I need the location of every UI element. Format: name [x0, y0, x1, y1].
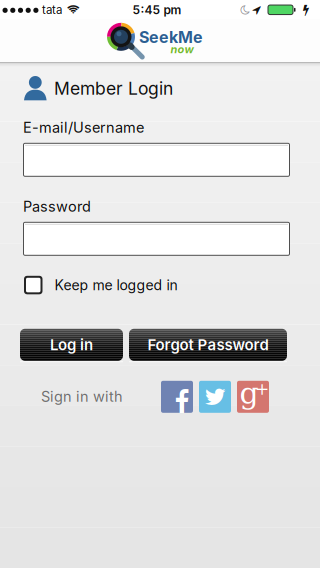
staticText: Keep me logged in	[54, 277, 177, 293]
staticText: Forgot Password	[147, 336, 268, 354]
staticText: 	[240, 4, 249, 15]
staticText: 5:45 pm	[132, 2, 181, 17]
staticText: 	[204, 385, 225, 408]
staticText: E-mail/Username	[23, 119, 144, 136]
staticText: 	[303, 4, 309, 16]
button[interactable]: 	[161, 381, 193, 413]
button[interactable]: Forgot Password	[129, 329, 287, 361]
staticText: tata	[42, 3, 62, 17]
button[interactable]: 	[199, 381, 231, 413]
staticText: g	[239, 376, 258, 411]
staticText: 	[174, 389, 189, 415]
staticText: Log in	[50, 336, 93, 354]
staticText: Member Login	[54, 78, 173, 99]
staticText: +	[255, 379, 269, 399]
staticText: 	[252, 4, 260, 15]
staticText: now	[170, 43, 193, 56]
staticText: 	[67, 4, 80, 15]
staticText: Sign in with	[41, 388, 123, 405]
staticText: Password	[23, 198, 91, 215]
button[interactable]: Log in	[20, 329, 123, 361]
button[interactable]: g	[237, 381, 269, 413]
button[interactable]	[23, 222, 290, 256]
button[interactable]: Keep me logged in	[24, 276, 177, 294]
staticText: SeekMe	[139, 28, 203, 47]
button[interactable]	[23, 143, 290, 177]
